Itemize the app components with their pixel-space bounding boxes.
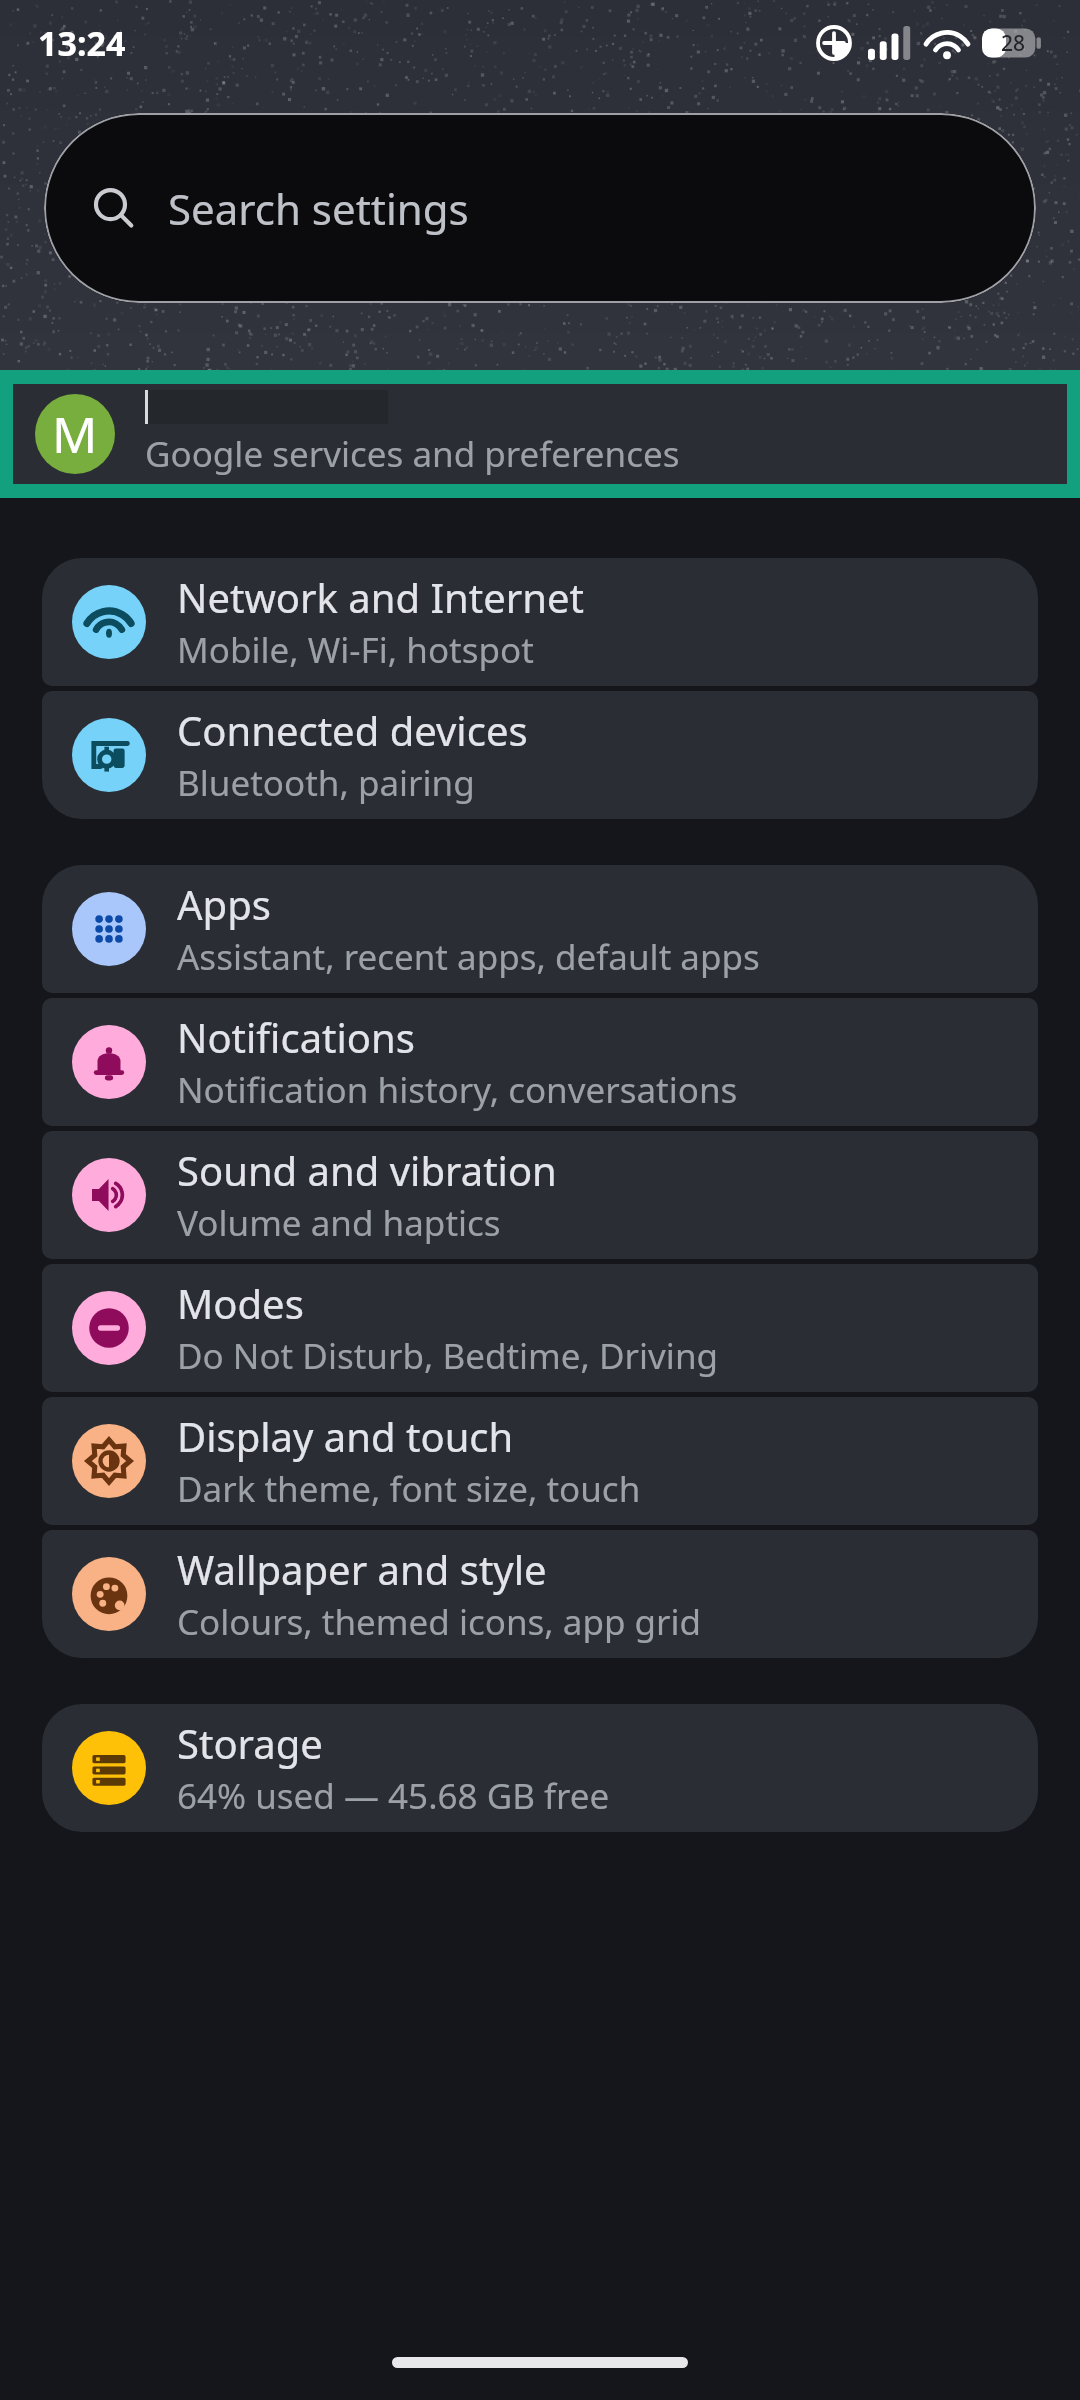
staticText: Notifications [177,1010,415,1064]
staticText: Dark theme, font size, touch [177,1465,641,1513]
staticText: 13:24 [38,20,126,66]
staticText: Search settings [168,180,469,237]
button[interactable]: Apps [42,865,1038,993]
button[interactable]: Notifications [42,998,1038,1126]
staticText: Do Not Disturb, Bedtime, Driving [177,1332,719,1380]
staticText: Bluetooth, pairing [177,759,475,807]
button[interactable]: Storage [42,1704,1038,1832]
button[interactable]: Display and touch [42,1397,1038,1525]
staticText: M [52,400,98,468]
staticText: Volume and haptics [177,1199,501,1247]
staticText: Display and touch [177,1409,514,1463]
button[interactable]: Network and Internet [42,558,1038,686]
staticText: Modes [177,1276,304,1330]
staticText: Wallpaper and style [177,1542,547,1596]
staticText: Assistant, recent apps, default apps [177,933,760,981]
staticText: Storage [177,1716,323,1770]
button[interactable]: M [13,384,1067,484]
button[interactable]: Search [44,113,1036,303]
staticText: Notification history, conversations [177,1066,738,1114]
staticText: Mobile, Wi-Fi, hotspot [177,626,534,674]
staticText: Google services and preferences [145,430,680,478]
button[interactable]: Sound and vibration [42,1131,1038,1259]
other: Search [92,187,136,231]
button[interactable]: Wallpaper and style [42,1530,1038,1658]
staticText: Apps [177,877,271,931]
staticText: Colours, themed icons, app grid [177,1598,702,1646]
staticText: Sound and vibration [177,1143,557,1197]
staticText: 28 [1001,29,1026,58]
button[interactable]: Connected devices [42,691,1038,819]
staticText: 64% used — 45.68 GB free [177,1772,610,1820]
staticText: Network and Internet [177,570,584,624]
staticText: Connected devices [177,703,528,757]
button[interactable]: Modes [42,1264,1038,1392]
